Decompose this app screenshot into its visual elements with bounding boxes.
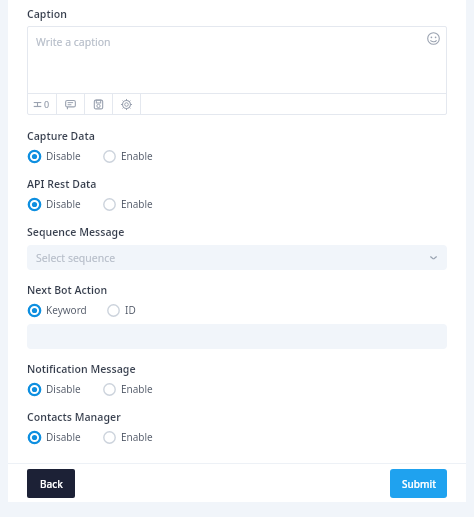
button[interactable]: Enable [102, 148, 154, 164]
button[interactable]: Back [27, 469, 75, 498]
staticText: Disable [46, 430, 81, 444]
staticText: Back [40, 477, 63, 491]
button[interactable]: ID [106, 302, 137, 318]
staticText: Enable [121, 430, 153, 444]
button[interactable]: Disable [27, 429, 82, 445]
staticText: Capture Data [27, 129, 95, 143]
button[interactable]: Disable [27, 381, 82, 397]
staticText: Contacts Manager [27, 410, 121, 424]
staticText: Disable [46, 382, 81, 396]
staticText: Notification Message [27, 362, 136, 376]
button[interactable]: Character count [27, 93, 56, 115]
staticText: Enable [121, 382, 153, 396]
button[interactable]: Write a caption [27, 26, 447, 93]
staticText: ID [125, 303, 136, 317]
staticText: 0 [44, 98, 50, 110]
button[interactable]: Enable [102, 381, 154, 397]
button[interactable]: Comment [57, 93, 84, 115]
staticText: API Rest Data [27, 177, 97, 191]
staticText: Disable [46, 149, 81, 163]
staticText: Submit [402, 477, 436, 491]
button[interactable]: Disable [27, 196, 82, 212]
staticText: Keyword [46, 303, 87, 317]
staticText: Next Bot Action [27, 283, 108, 297]
staticText: Sequence Message [27, 225, 125, 239]
button[interactable]: Keyword [27, 302, 88, 318]
button[interactable]: Enable [102, 196, 154, 212]
staticText: Write a caption [36, 35, 111, 49]
button[interactable]: Save [85, 93, 112, 115]
staticText: Enable [121, 149, 153, 163]
button[interactable]: Submit [390, 469, 447, 498]
staticText: Caption [27, 7, 67, 21]
button[interactable]: Select sequence [27, 245, 447, 270]
staticText: Disable [46, 197, 81, 211]
button[interactable]: Insert emoji [427, 32, 440, 45]
button[interactable]: Disable [27, 148, 82, 164]
button[interactable]: Enable [102, 429, 154, 445]
button[interactable]: Settings [113, 93, 140, 115]
staticText: Select sequence [36, 251, 116, 265]
staticText: Enable [121, 197, 153, 211]
